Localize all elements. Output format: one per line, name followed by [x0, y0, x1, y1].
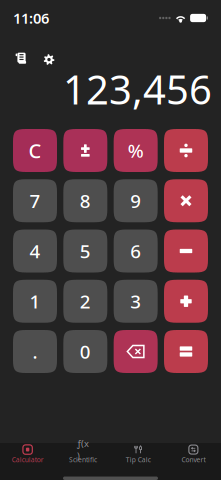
button[interactable]: % [114, 129, 158, 172]
button[interactable]: 6 [114, 229, 158, 272]
button[interactable]: Multiply [164, 179, 208, 222]
button[interactable]: Plus minus [63, 129, 107, 172]
button[interactable]: History [9, 36, 33, 70]
button[interactable]: C [13, 129, 57, 172]
button[interactable]: Tip Calc [110, 440, 166, 468]
button[interactable]: Settings [37, 36, 61, 70]
staticText: Calculator [12, 455, 44, 464]
staticText: 4 [29, 239, 40, 263]
button[interactable]: ƒ(x) [55, 440, 110, 468]
staticText: 8 [80, 188, 91, 213]
button[interactable]: Plus [164, 280, 208, 323]
staticText: Tip Calc [126, 455, 151, 464]
staticText: 11:06 [13, 8, 49, 28]
button[interactable]: 4 [13, 229, 57, 272]
staticText: ƒ(x) [77, 437, 89, 462]
staticText: C [28, 137, 41, 164]
button[interactable]: 1 [13, 280, 57, 323]
button[interactable]: 8 [63, 179, 107, 222]
button[interactable]: Minus [164, 229, 208, 272]
staticText: 6 [130, 239, 141, 263]
staticText: Convert [181, 455, 205, 464]
staticText: 7 [29, 188, 40, 213]
button[interactable]: 7 [13, 179, 57, 222]
staticText: 123,456 [63, 62, 212, 115]
staticText: Scientific [69, 455, 97, 464]
button[interactable]: . [13, 330, 57, 373]
staticText: 3 [130, 289, 141, 314]
staticText: 0 [80, 339, 91, 364]
staticText: . [32, 339, 37, 364]
button[interactable]: Delete [114, 330, 158, 373]
button[interactable]: Divide [164, 129, 208, 172]
button[interactable]: 5 [63, 229, 107, 272]
staticText: 9 [130, 188, 141, 213]
staticText: 2 [80, 289, 91, 314]
button[interactable]: 9 [114, 179, 158, 222]
staticText: 1 [29, 289, 40, 314]
staticText: 5 [80, 239, 91, 263]
button[interactable]: 2 [63, 280, 107, 323]
button[interactable]: 3 [114, 280, 158, 323]
staticText: % [128, 138, 144, 163]
button[interactable]: Convert [166, 440, 221, 468]
button[interactable]: 0 [63, 330, 107, 373]
button[interactable]: Calculator [0, 440, 55, 468]
button[interactable]: Equals [164, 330, 208, 373]
